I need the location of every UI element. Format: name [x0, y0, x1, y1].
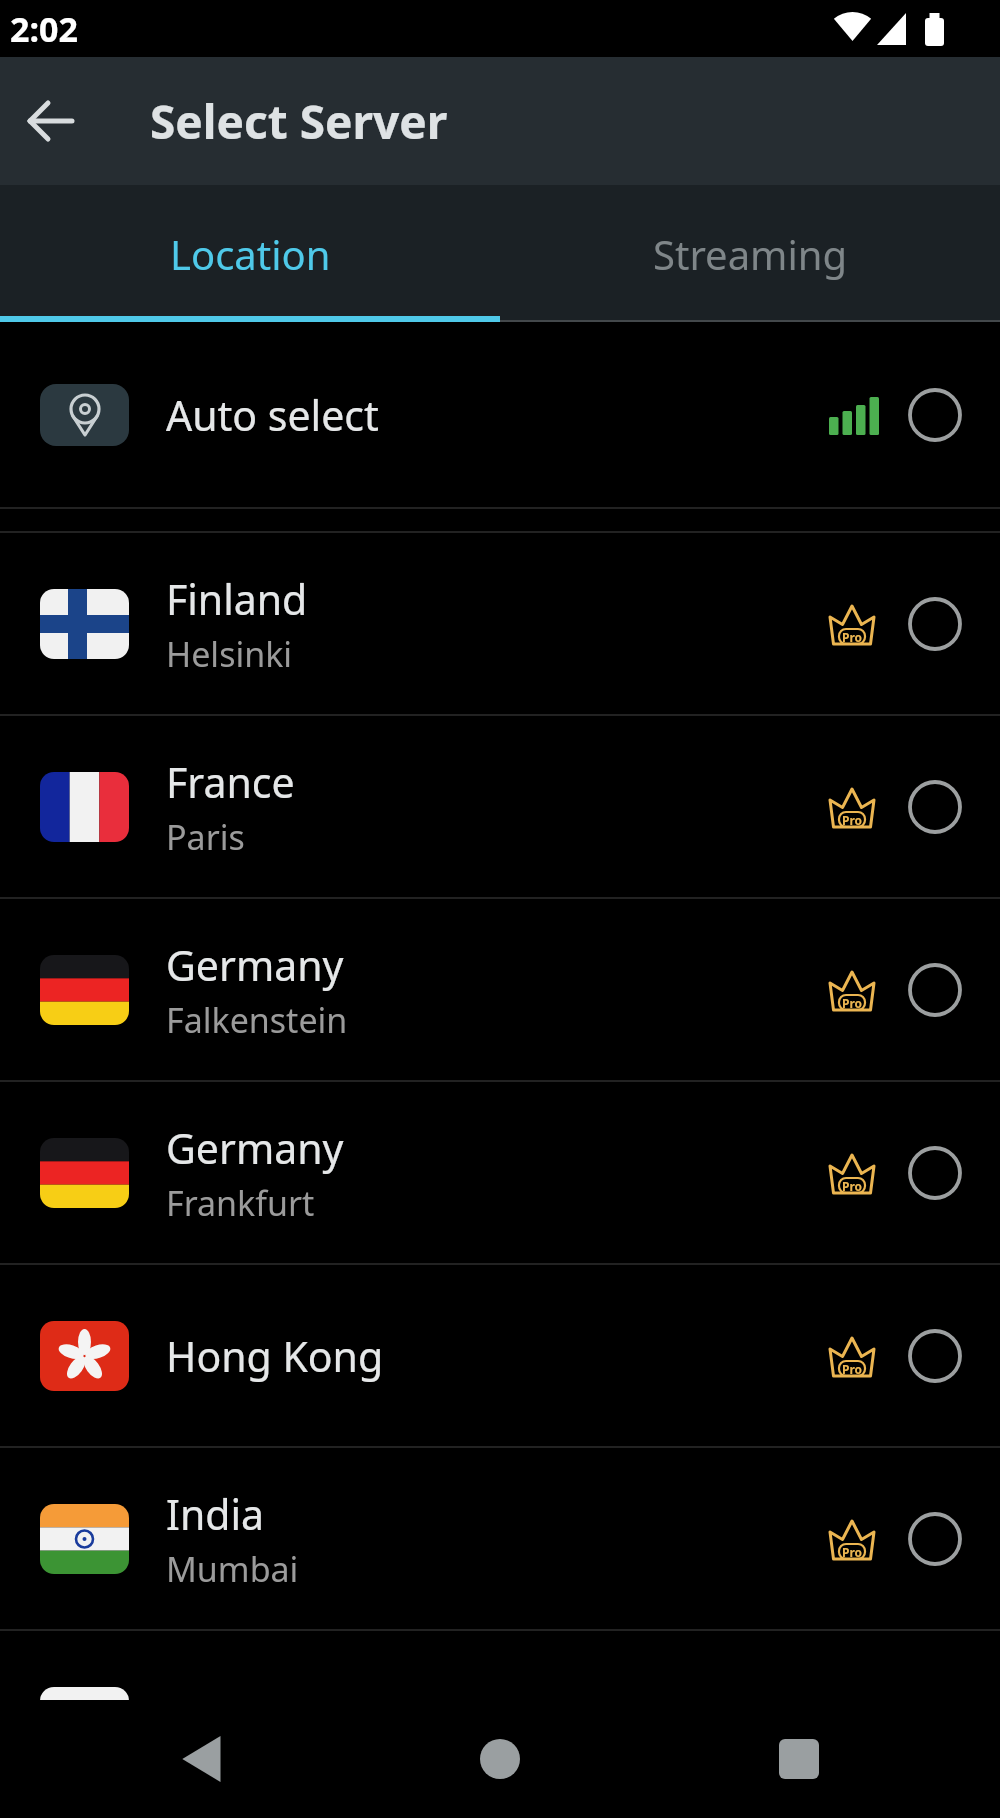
- staticText: Pro: [842, 995, 863, 1011]
- staticText: Select Server: [150, 90, 448, 153]
- staticText: Japan: [166, 1694, 274, 1750]
- button[interactable]: India: [0, 1448, 1000, 1629]
- staticText: France: [166, 754, 295, 810]
- staticText: Pro: [842, 812, 863, 828]
- button[interactable]: Auto select: [0, 322, 1000, 507]
- staticText: Falkenstein: [166, 997, 348, 1043]
- staticText: 2:02: [10, 6, 78, 52]
- staticText: Germany: [166, 1120, 344, 1176]
- button[interactable]: [479, 1738, 521, 1780]
- button[interactable]: Hong Kong: [0, 1265, 1000, 1446]
- button[interactable]: Germany: [0, 899, 1000, 1080]
- staticText: Frankfurt: [166, 1180, 315, 1226]
- staticText: India: [166, 1486, 265, 1542]
- button[interactable]: France: [0, 716, 1000, 897]
- staticText: Mumbai: [166, 1546, 299, 1592]
- button[interactable]: Japan: [0, 1631, 1000, 1812]
- staticText: Pro: [842, 629, 863, 645]
- staticText: Finland: [166, 571, 308, 627]
- staticText: Location: [170, 227, 331, 281]
- staticText: Pro: [842, 1544, 863, 1560]
- button[interactable]: [180, 1736, 226, 1782]
- button[interactable]: Finland: [0, 533, 1000, 714]
- button[interactable]: [26, 96, 76, 146]
- button[interactable]: Germany: [0, 1082, 1000, 1263]
- button[interactable]: Streaming: [500, 185, 1000, 322]
- staticText: Auto select: [166, 387, 829, 443]
- staticText: Helsinki: [166, 631, 293, 677]
- staticText: Pro: [842, 1178, 863, 1194]
- staticText: Germany: [166, 937, 344, 993]
- button[interactable]: Location: [0, 185, 500, 322]
- staticText: Paris: [166, 814, 245, 860]
- staticText: Pro: [842, 1361, 863, 1377]
- button[interactable]: [778, 1738, 820, 1780]
- staticText: Hong Kong: [166, 1328, 384, 1384]
- staticText: Streaming: [653, 227, 848, 281]
